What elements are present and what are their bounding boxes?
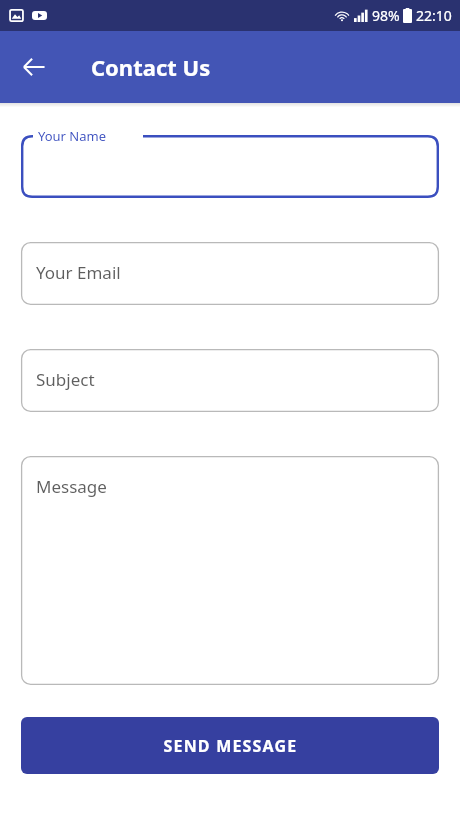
button[interactable]: Your Name	[21, 135, 439, 198]
button[interactable]: Back	[10, 43, 58, 91]
button[interactable]: Your Email	[21, 242, 439, 305]
staticText: SEND MESSAGE	[163, 735, 298, 757]
staticText: Your Name	[38, 127, 107, 145]
staticText: Subject	[36, 368, 95, 391]
staticText: Message	[36, 475, 107, 498]
staticText: 22:10	[416, 6, 452, 25]
button[interactable]: Message	[21, 456, 439, 685]
button[interactable]: Subject	[21, 349, 439, 412]
button[interactable]: SEND MESSAGE	[21, 717, 439, 774]
staticText: Contact Us	[91, 52, 211, 82]
staticText: Your Email	[36, 261, 121, 284]
staticText: 98%	[372, 6, 400, 25]
